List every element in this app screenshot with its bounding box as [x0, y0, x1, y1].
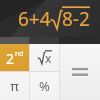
button[interactable]: Equals: [60, 44, 100, 100]
button[interactable]: π: [0, 72, 29, 100]
staticText: π: [10, 77, 19, 95]
staticText: %: [39, 77, 50, 95]
staticText: nd: [15, 49, 24, 59]
button[interactable]: 2: [0, 44, 29, 72]
staticText: x: [45, 50, 52, 66]
staticText: 8-2: [62, 6, 90, 32]
button[interactable]: Square root of x: [30, 44, 59, 72]
button[interactable]: %: [30, 72, 59, 100]
staticText: 6+4: [18, 6, 51, 32]
staticText: 2: [6, 49, 15, 68]
